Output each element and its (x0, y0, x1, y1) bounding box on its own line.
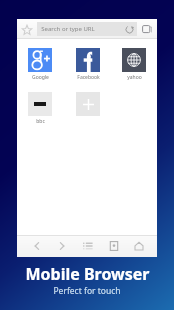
staticText: Google (32, 74, 49, 81)
staticText: Mobile Browser (25, 263, 150, 285)
button[interactable]: bbc (20, 92, 60, 125)
button[interactable] (68, 92, 108, 118)
button[interactable]: Search or type URL (37, 22, 137, 36)
staticText: bbc (36, 118, 45, 125)
button[interactable]: Back (27, 236, 47, 256)
button[interactable]: yahoo (114, 48, 154, 81)
button[interactable]: Reload (122, 22, 136, 36)
button[interactable]: Facebook (68, 48, 108, 81)
button[interactable]: Bookmark (18, 21, 36, 39)
button[interactable]: Forward (52, 236, 72, 256)
staticText: Facebook (77, 74, 100, 81)
button[interactable]: Bookmarks (104, 236, 124, 256)
button[interactable]: Google (20, 48, 60, 81)
staticText: Perfect for touch (53, 285, 121, 297)
staticText: yahoo (127, 74, 142, 81)
button[interactable]: Menu (78, 236, 98, 256)
staticText: Search or type URL (41, 25, 95, 33)
button[interactable]: Home (129, 236, 149, 256)
button[interactable]: Tabs (139, 22, 155, 36)
